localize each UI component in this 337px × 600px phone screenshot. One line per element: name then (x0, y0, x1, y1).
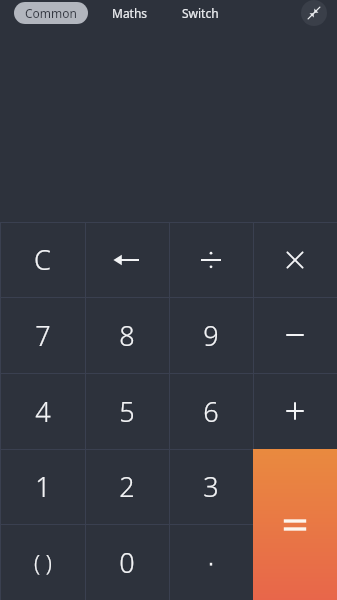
button[interactable]: Minus (253, 297, 337, 373)
staticText: 2 (119, 468, 135, 505)
staticText: 9 (203, 317, 219, 354)
button[interactable]: Collapse (301, 0, 327, 26)
button[interactable]: Backspace (85, 222, 169, 297)
staticText: 7 (35, 317, 51, 354)
button[interactable]: 7 (0, 297, 85, 373)
staticText: Common (25, 5, 77, 21)
button[interactable]: Divide (169, 222, 253, 297)
button[interactable]: Maths (106, 2, 154, 24)
staticText: Maths (112, 5, 148, 21)
button[interactable]: Decimal point (169, 524, 253, 600)
button[interactable]: 0 (85, 524, 169, 600)
button[interactable]: 3 (169, 449, 253, 524)
button[interactable]: Multiply (253, 222, 337, 297)
button[interactable]: Common (14, 2, 88, 24)
staticText: 0 (119, 544, 135, 581)
staticText: Switch (182, 5, 219, 21)
staticText: 3 (203, 468, 219, 505)
button[interactable]: 8 (85, 297, 169, 373)
staticText: C (34, 241, 51, 278)
staticText: 8 (119, 317, 135, 354)
staticText: 5 (119, 393, 135, 430)
button[interactable]: 1 (0, 449, 85, 524)
button[interactable]: 2 (85, 449, 169, 524)
staticText: 4 (35, 393, 51, 430)
staticText: ( ) (34, 547, 52, 577)
staticText: 6 (203, 393, 219, 430)
button[interactable]: Equals (253, 449, 337, 600)
button[interactable]: 4 (0, 373, 85, 449)
staticText: 1 (35, 468, 51, 505)
button[interactable]: 5 (85, 373, 169, 449)
button[interactable]: 6 (169, 373, 253, 449)
button[interactable]: Plus (253, 373, 337, 449)
button[interactable]: ( ) (0, 524, 85, 600)
button[interactable]: Switch (176, 2, 225, 24)
button[interactable]: C (0, 222, 85, 297)
button[interactable]: 9 (169, 297, 253, 373)
